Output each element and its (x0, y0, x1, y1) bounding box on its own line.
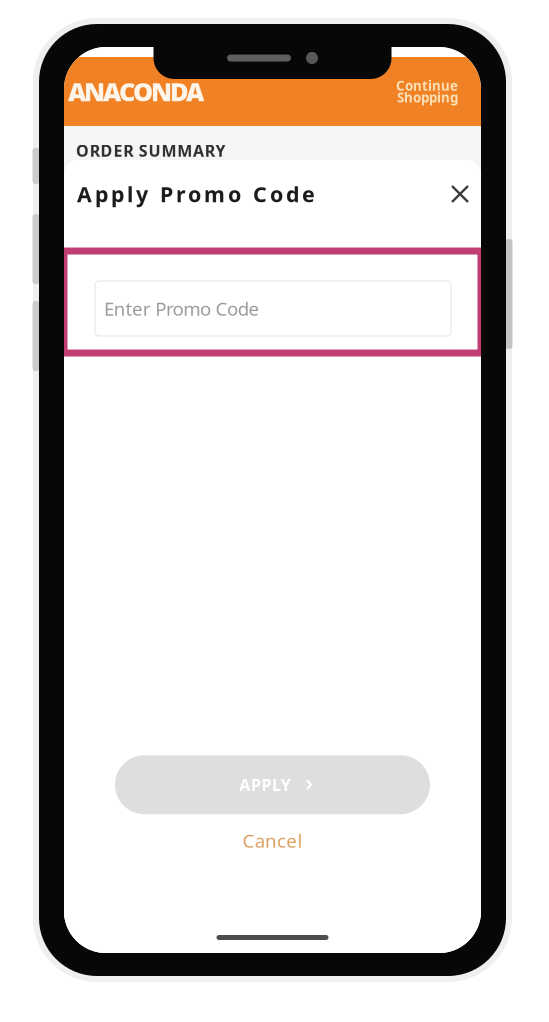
button[interactable]: Cancel (218, 819, 326, 862)
staticText: Continue (396, 77, 458, 94)
button[interactable]: Enter Promo Code (64, 251, 481, 353)
staticText: ANACONDA (68, 75, 204, 108)
staticText: Enter Promo Code (104, 296, 259, 321)
staticText: Shopping (397, 88, 458, 106)
button[interactable]: Continue (396, 77, 458, 106)
staticText: Cancel (242, 828, 302, 853)
staticText: ORDER SUMMARY (76, 140, 226, 161)
button[interactable]: Close (443, 177, 477, 211)
staticText: Apply Promo Code (77, 180, 315, 208)
button[interactable]: APPLY (64, 755, 481, 814)
staticText: APPLY (239, 774, 291, 795)
